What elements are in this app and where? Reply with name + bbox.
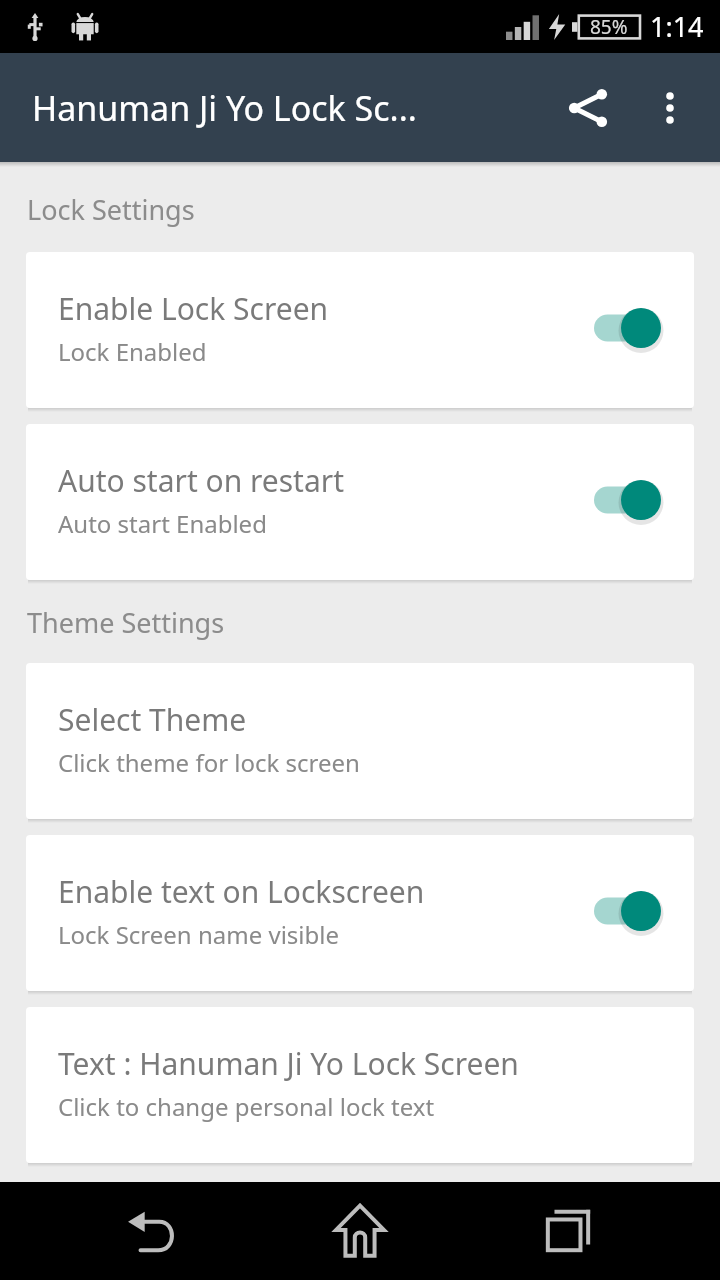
button[interactable]: Enable Lock Screen — [26, 252, 694, 408]
staticText: 85% — [590, 14, 628, 40]
button[interactable]: Enable text on Lockscreen — [26, 835, 694, 991]
staticText: Click to change personal lock text — [58, 1090, 435, 1123]
button[interactable]: Select Theme — [26, 663, 694, 819]
staticText: Select Theme — [58, 699, 247, 740]
button[interactable]: Toggle Auto start on restart — [592, 476, 668, 524]
staticText: Enable Lock Screen — [58, 288, 329, 329]
staticText: Enable text on Lockscreen — [58, 871, 425, 912]
staticText: Lock Settings — [27, 191, 195, 228]
staticText: Auto start Enabled — [58, 507, 267, 540]
button[interactable]: Share — [546, 66, 630, 150]
button[interactable]: Text : Hanuman Ji Yo Lock Screen — [26, 1007, 694, 1163]
button[interactable]: Home — [305, 1182, 415, 1280]
staticText: Hanuman Ji Yo Lock Sc... — [32, 85, 417, 131]
staticText: Theme Settings — [27, 604, 225, 641]
staticText: Text : Hanuman Ji Yo Lock Screen — [58, 1043, 519, 1084]
button[interactable]: Toggle Enable Lock Screen — [592, 304, 668, 352]
staticText: Click theme for lock screen — [58, 746, 360, 779]
button[interactable]: Auto start on restart — [26, 424, 694, 580]
staticText: 1:14 — [650, 8, 704, 45]
button[interactable]: Recent apps — [513, 1182, 623, 1280]
staticText: Lock Screen name visible — [58, 918, 340, 951]
button[interactable]: Back — [98, 1182, 208, 1280]
staticText: Auto start on restart — [58, 460, 344, 501]
button[interactable]: Toggle Enable text on Lockscreen — [592, 887, 668, 935]
button[interactable]: More options — [630, 68, 710, 148]
staticText: Lock Enabled — [58, 335, 207, 368]
